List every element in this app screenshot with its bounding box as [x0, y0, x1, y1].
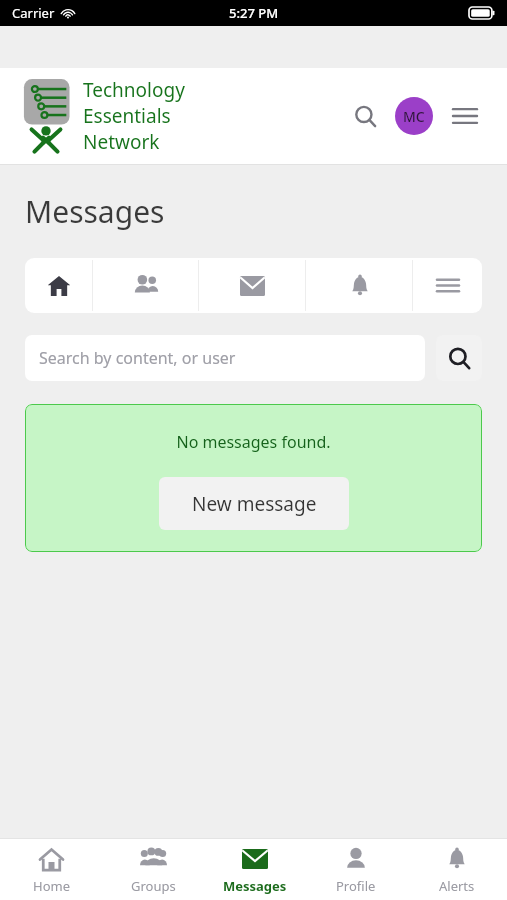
staticText: Home	[33, 877, 70, 895]
staticText: Carrier	[12, 4, 55, 22]
staticText: New message	[192, 491, 317, 517]
staticText: Essentials	[83, 103, 171, 129]
button[interactable]: Profile	[305, 839, 406, 900]
button[interactable]: Search	[436, 335, 482, 381]
button[interactable]: New message	[159, 477, 349, 530]
staticText: Alerts	[439, 877, 475, 895]
staticText: Network	[83, 129, 160, 155]
button[interactable]: Groups	[102, 839, 204, 900]
button[interactable]: Tab	[199, 258, 306, 313]
staticText: MC	[403, 107, 425, 126]
button[interactable]: Tab	[306, 258, 413, 313]
button[interactable]: Tab	[413, 258, 482, 313]
button[interactable]: Tab	[93, 258, 199, 313]
staticText: Groups	[131, 877, 176, 895]
button[interactable]: Alerts	[406, 839, 507, 900]
button[interactable]: Search by content, or user	[25, 335, 425, 381]
staticText: Search by content, or user	[39, 347, 236, 369]
staticText: Profile	[336, 877, 376, 895]
staticText: No messages found.	[176, 431, 331, 453]
staticText: Messages	[25, 191, 165, 232]
staticText: Technology	[83, 77, 185, 103]
button[interactable]: Messages	[204, 839, 305, 900]
staticText: 5:27 PM	[229, 4, 279, 22]
button[interactable]: Home	[0, 839, 102, 900]
button[interactable]: Profile avatar MC	[395, 97, 433, 135]
button[interactable]: Menu	[445, 96, 485, 136]
staticText: Messages	[223, 877, 287, 895]
button[interactable]: Search	[345, 96, 385, 136]
button[interactable]: Tab	[25, 258, 93, 313]
